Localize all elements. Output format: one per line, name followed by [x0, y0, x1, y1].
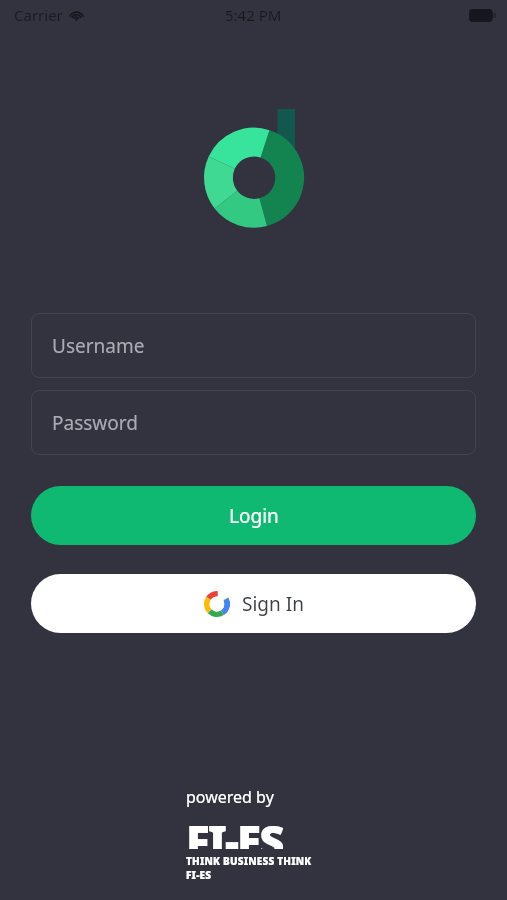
staticText: Username — [52, 333, 145, 359]
staticText: Sign In — [242, 591, 304, 617]
staticText: 5:42 PM — [225, 5, 282, 25]
button[interactable]: Sign In — [31, 574, 476, 633]
button[interactable]: Login — [31, 486, 476, 545]
staticText: Password — [52, 410, 138, 436]
staticText: powered by — [186, 786, 274, 808]
button[interactable]: Username — [31, 313, 476, 378]
staticText: Carrier — [14, 5, 63, 25]
staticText: THINK BUSINESS THINK FI-ES — [186, 854, 321, 882]
staticText: Login — [229, 503, 279, 529]
button[interactable]: Password — [31, 390, 476, 455]
staticText: FI-ES — [186, 811, 283, 849]
